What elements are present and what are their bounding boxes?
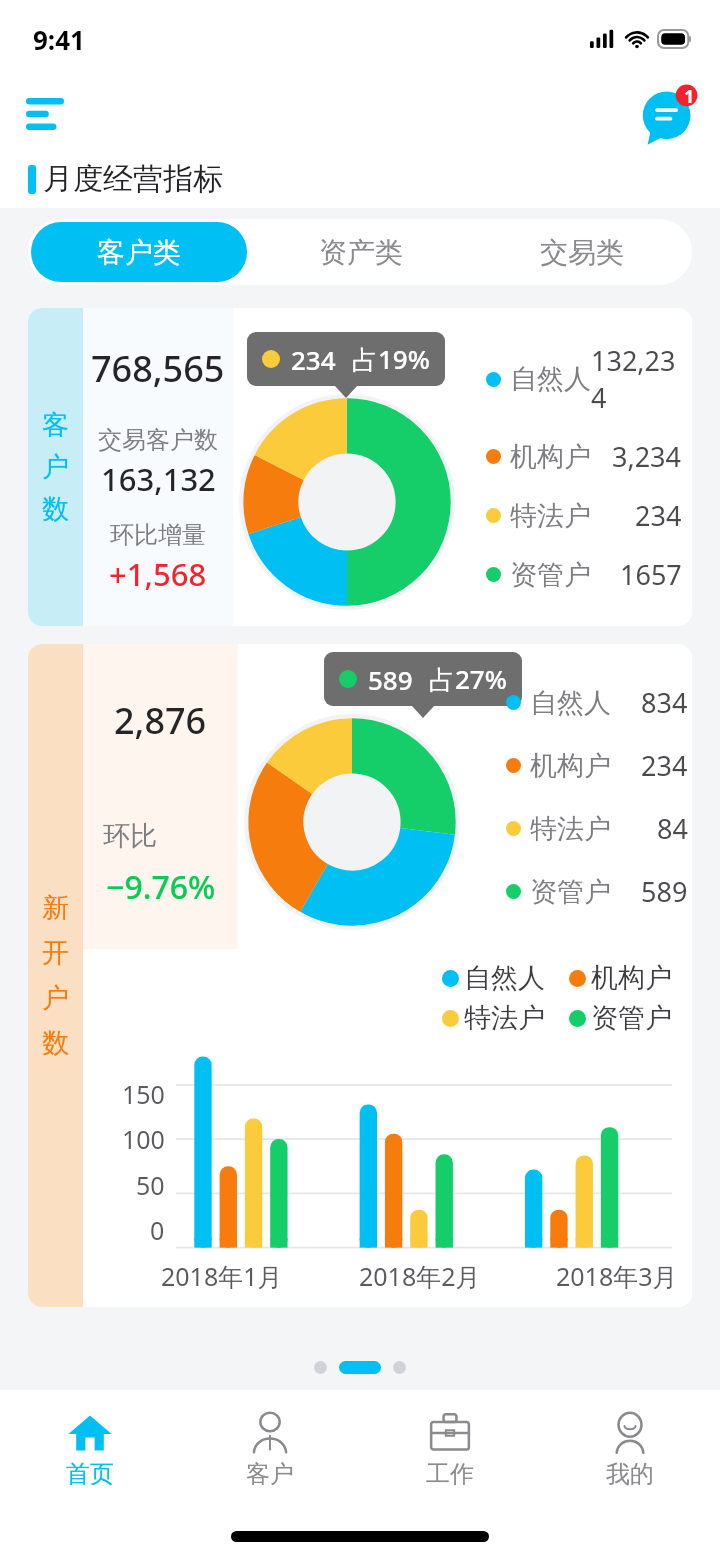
button[interactable]: Messages bbox=[636, 80, 704, 148]
button[interactable]: 我的 bbox=[540, 1390, 720, 1508]
staticText: 月度经营指标 bbox=[43, 160, 223, 198]
staticText: 2,876 bbox=[114, 696, 207, 745]
staticText: 163,132 bbox=[101, 458, 216, 500]
staticText: 234 bbox=[641, 747, 688, 784]
staticText: 2018年1月 bbox=[161, 1259, 283, 1293]
staticText: 834 bbox=[641, 684, 688, 721]
staticText: 50 bbox=[136, 1168, 165, 1202]
staticText: 特法户 bbox=[464, 1001, 545, 1035]
staticText: 客户类 bbox=[97, 235, 181, 270]
staticText: 环比增量 bbox=[110, 520, 206, 550]
staticText: 资管户 bbox=[510, 558, 591, 592]
staticText: 客 户 数 bbox=[42, 408, 69, 526]
staticText: 工作 bbox=[426, 1459, 474, 1489]
staticText: 占19% bbox=[352, 341, 430, 377]
staticText: 机构户 bbox=[591, 961, 672, 995]
staticText: 新 开 户 数 bbox=[42, 891, 69, 1060]
staticText: 机构户 bbox=[510, 440, 591, 474]
button[interactable]: 首页 bbox=[0, 1390, 180, 1508]
staticText: 首页 bbox=[66, 1459, 114, 1489]
staticText: 自然人 bbox=[530, 686, 611, 720]
button[interactable]: 资产类 bbox=[253, 222, 468, 282]
staticText: 132,234 bbox=[591, 342, 682, 416]
staticText: 234 bbox=[291, 342, 336, 377]
button[interactable]: 客户类 bbox=[31, 222, 247, 282]
staticText: 特法户 bbox=[510, 499, 591, 533]
button[interactable]: 工作 bbox=[360, 1390, 540, 1508]
staticText: 机构户 bbox=[530, 749, 611, 783]
button[interactable]: 交易类 bbox=[474, 222, 689, 282]
staticText: 2018年3月 bbox=[556, 1259, 678, 1293]
staticText: 特法户 bbox=[530, 812, 611, 846]
staticText: 3,234 bbox=[612, 438, 682, 475]
staticText: 资产类 bbox=[319, 235, 403, 270]
button[interactable]: 客户 bbox=[180, 1390, 360, 1508]
staticText: 1 bbox=[678, 85, 700, 108]
staticText: 我的 bbox=[606, 1459, 654, 1489]
staticText: 占27% bbox=[429, 661, 507, 697]
staticText: 234 bbox=[635, 497, 682, 534]
staticText: 资管户 bbox=[591, 1001, 672, 1035]
staticText: 自然人 bbox=[510, 362, 591, 396]
staticText: 自然人 bbox=[464, 961, 545, 995]
staticText: 768,565 bbox=[91, 344, 225, 393]
staticText: 客户 bbox=[246, 1459, 294, 1489]
button[interactable]: 客 户 数 bbox=[28, 308, 692, 626]
staticText: −9.76% bbox=[106, 865, 216, 909]
staticText: 150 bbox=[122, 1077, 165, 1111]
staticText: 环比 bbox=[103, 819, 157, 853]
staticText: 100 bbox=[122, 1122, 165, 1156]
staticText: 资管户 bbox=[530, 875, 611, 909]
staticText: 交易类 bbox=[540, 235, 624, 270]
staticText: 1657 bbox=[620, 556, 682, 593]
staticText: 0 bbox=[150, 1213, 165, 1247]
button[interactable]: 新 开 户 数 bbox=[28, 644, 692, 1307]
staticText: 9:41 bbox=[33, 22, 85, 57]
button[interactable]: Menu bbox=[14, 83, 76, 145]
staticText: 84 bbox=[657, 810, 688, 847]
staticText: 交易客户数 bbox=[98, 425, 218, 455]
staticText: 589 bbox=[641, 873, 688, 910]
staticText: 589 bbox=[368, 662, 413, 697]
staticText: 2018年2月 bbox=[359, 1259, 481, 1293]
staticText: +1,568 bbox=[109, 553, 207, 595]
